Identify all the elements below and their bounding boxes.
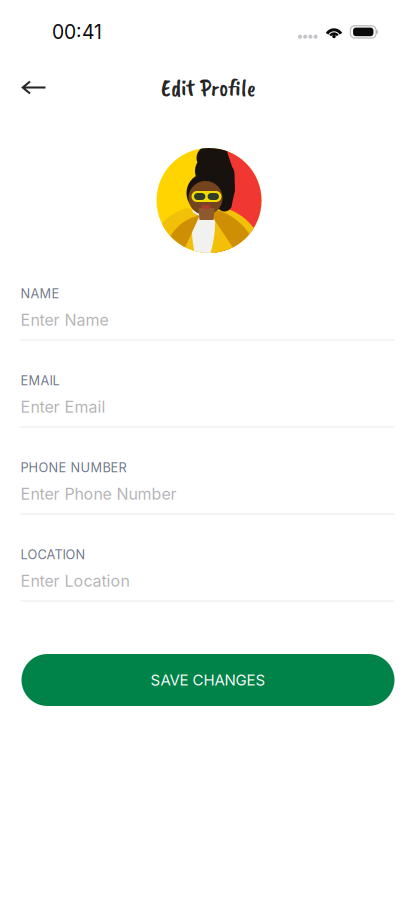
staticText: Enter Email <box>20 397 105 417</box>
button[interactable]: SAVE CHANGES <box>21 654 394 706</box>
staticText: PHONE NUMBER <box>20 460 126 475</box>
staticText: LOCATION <box>20 547 85 562</box>
staticText: Enter Name <box>20 310 108 330</box>
staticText: SAVE CHANGES <box>150 671 265 689</box>
staticText: NAME <box>20 286 59 301</box>
staticText: EMAIL <box>20 373 59 388</box>
staticText: Enter Location <box>20 571 129 591</box>
staticText: 00:41 <box>52 20 102 44</box>
staticText: Edit Profile <box>161 72 256 103</box>
button[interactable]: Back <box>12 65 56 109</box>
staticText: Enter Phone Number <box>20 484 176 504</box>
